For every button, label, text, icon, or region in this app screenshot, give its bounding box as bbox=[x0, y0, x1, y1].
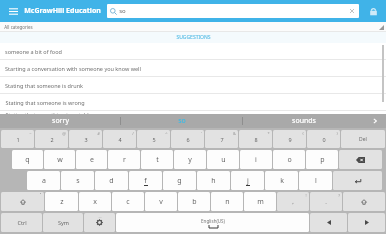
button[interactable]: Del bbox=[341, 130, 385, 148]
button[interactable]: u bbox=[207, 150, 239, 169]
staticText: 9 bbox=[288, 136, 292, 143]
button[interactable]: t bbox=[141, 150, 173, 169]
staticText: t bbox=[156, 155, 159, 165]
staticText: ( bbox=[302, 131, 304, 136]
staticText: g bbox=[177, 176, 182, 186]
staticText: Sym bbox=[58, 219, 69, 226]
staticText: n bbox=[225, 197, 230, 207]
button[interactable]: f bbox=[129, 171, 162, 190]
button[interactable]: y bbox=[174, 150, 206, 169]
staticText: ' bbox=[201, 131, 202, 136]
button[interactable]: i bbox=[240, 150, 272, 169]
staticText: h bbox=[211, 176, 216, 186]
button[interactable]: n bbox=[211, 192, 243, 211]
button[interactable]: 2 bbox=[35, 130, 68, 148]
staticText: b bbox=[192, 197, 197, 207]
staticText: Stating that someone is wrong bbox=[5, 99, 85, 106]
staticText: 6 bbox=[186, 136, 190, 143]
button[interactable]: w bbox=[44, 150, 75, 169]
button[interactable]: Stating that someone is drunk bbox=[0, 77, 386, 94]
button[interactable]: so bbox=[107, 4, 359, 18]
button[interactable]: Move right bbox=[348, 213, 385, 232]
button[interactable]: 5 bbox=[137, 130, 170, 148]
button[interactable]: x bbox=[79, 192, 111, 211]
button[interactable]: Sym bbox=[43, 213, 83, 232]
staticText: v bbox=[159, 197, 163, 207]
staticText: s bbox=[76, 176, 80, 186]
button[interactable]: c bbox=[112, 192, 144, 211]
button[interactable]: 0 bbox=[307, 130, 340, 148]
staticText: SUGGESTIONS bbox=[176, 34, 211, 41]
staticText: / bbox=[132, 131, 134, 136]
staticText: @ bbox=[62, 131, 66, 136]
button[interactable]: 6 bbox=[171, 130, 204, 148]
button[interactable]: Space bbox=[116, 213, 309, 232]
button[interactable]: 9 bbox=[273, 130, 306, 148]
button[interactable]: a bbox=[27, 171, 60, 190]
button[interactable]: Move left bbox=[310, 213, 347, 232]
button[interactable]: All categories bbox=[0, 22, 386, 32]
staticText: j bbox=[247, 176, 249, 186]
staticText: Stating that someone is drunk bbox=[5, 82, 83, 89]
button[interactable]: 4 bbox=[103, 130, 136, 148]
button[interactable]: Menu bbox=[5, 3, 21, 19]
button[interactable]: m bbox=[244, 192, 276, 211]
button[interactable]: 8 bbox=[239, 130, 272, 148]
button[interactable]: sounds bbox=[243, 114, 364, 128]
button[interactable]: Clear bbox=[348, 7, 356, 15]
staticText: c bbox=[126, 197, 130, 207]
button[interactable]: someone a bit of food bbox=[0, 43, 386, 60]
staticText: 3 bbox=[84, 136, 88, 143]
button[interactable]: Settings bbox=[84, 213, 115, 232]
staticText: McGrawHill Education bbox=[24, 6, 101, 16]
button[interactable]: Enter bbox=[333, 171, 382, 190]
button[interactable]: Ctrl bbox=[1, 213, 42, 232]
staticText: * bbox=[267, 131, 270, 136]
staticText: . bbox=[325, 198, 327, 206]
staticText: r bbox=[123, 155, 126, 165]
button[interactable]: l bbox=[299, 171, 332, 190]
button[interactable]: k bbox=[265, 171, 298, 190]
button[interactable]: More suggestions bbox=[364, 114, 386, 128]
staticText: 0 bbox=[322, 136, 326, 143]
button[interactable]: d bbox=[95, 171, 128, 190]
button[interactable]: 7 bbox=[205, 130, 238, 148]
staticText: l bbox=[315, 176, 317, 186]
button[interactable]: 1 bbox=[1, 130, 34, 148]
button[interactable]: Stating that something is untold bbox=[0, 111, 386, 114]
button[interactable]: Shift bbox=[343, 192, 385, 211]
button[interactable]: p bbox=[306, 150, 338, 169]
button[interactable]: h bbox=[197, 171, 230, 190]
button[interactable]: s bbox=[61, 171, 94, 190]
button[interactable]: e bbox=[76, 150, 107, 169]
button[interactable]: b bbox=[178, 192, 210, 211]
staticText: a bbox=[42, 176, 46, 186]
button[interactable]: Backspace bbox=[339, 150, 382, 169]
staticText: m bbox=[257, 197, 264, 207]
button[interactable]: sorry bbox=[0, 114, 120, 128]
staticText: ... bbox=[98, 214, 102, 219]
button[interactable]: q bbox=[12, 150, 43, 169]
button[interactable]: g bbox=[163, 171, 196, 190]
button[interactable]: Shift bbox=[1, 192, 44, 211]
staticText: so bbox=[119, 7, 126, 15]
button[interactable]: z bbox=[45, 192, 78, 211]
staticText: English(US) bbox=[201, 218, 225, 224]
button[interactable]: j bbox=[231, 171, 264, 190]
button[interactable]: r bbox=[108, 150, 140, 169]
button[interactable]: so bbox=[121, 114, 242, 128]
button[interactable]: Stating that someone is wrong bbox=[0, 94, 386, 111]
staticText: d bbox=[109, 176, 114, 186]
staticText: 4 bbox=[118, 136, 122, 143]
staticText: ~ bbox=[29, 131, 32, 136]
button[interactable]: o bbox=[273, 150, 305, 169]
staticText: q bbox=[25, 155, 30, 165]
staticText: f bbox=[144, 176, 147, 186]
button[interactable]: Lock bbox=[365, 3, 381, 19]
button[interactable]: Starting a conversation with someone you… bbox=[0, 60, 386, 77]
button[interactable]: v bbox=[145, 192, 177, 211]
button[interactable]: 3 bbox=[69, 130, 102, 148]
staticText: 5 bbox=[152, 136, 156, 143]
